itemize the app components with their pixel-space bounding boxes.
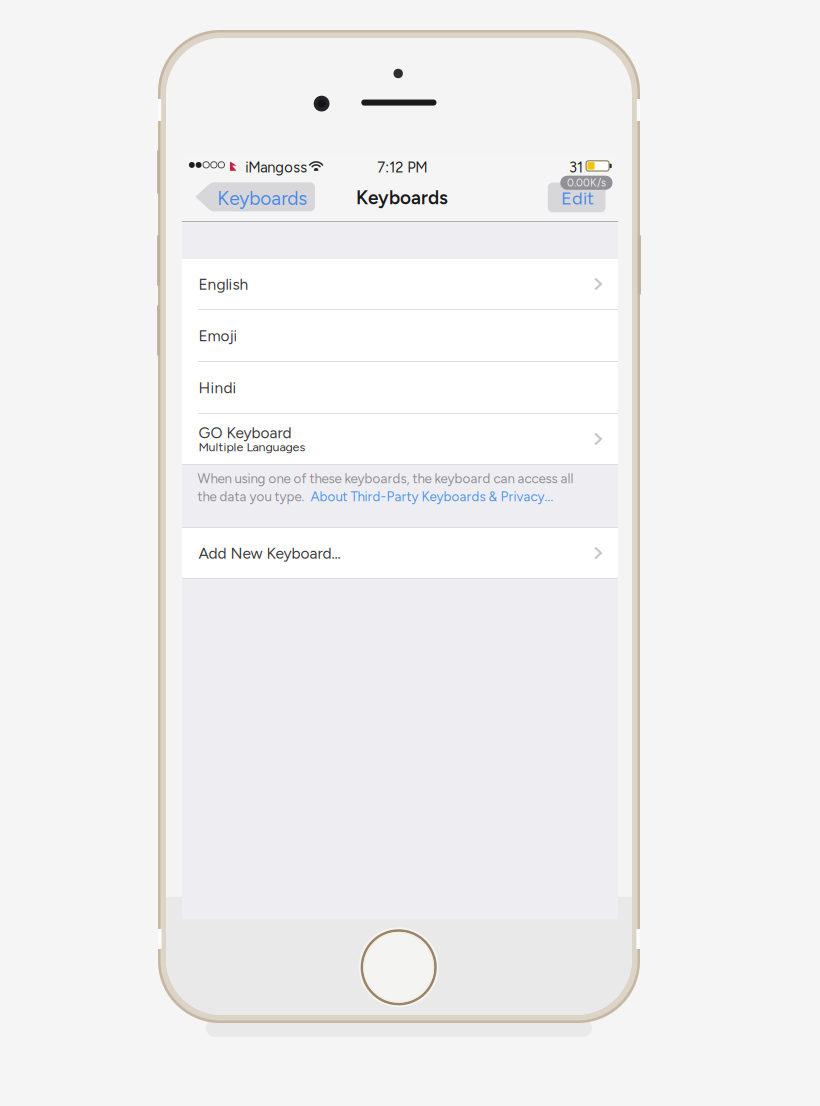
staticText: Keyboards [356,186,448,209]
button[interactable]: Emoji [182,310,618,361]
staticText: Edit [561,187,594,209]
button[interactable]: Keyboards [195,182,315,211]
staticText: Add New Keyboard... [198,544,340,563]
button[interactable]: Hindi [182,362,618,413]
staticText: About Third-Party Keyboards & Privacy... [311,488,554,504]
button[interactable]: Add New Keyboard... [182,528,618,578]
staticText: Emoji [198,326,237,345]
button[interactable]: About Third-Party Keyboards & Privacy... [311,488,554,504]
staticText: 0.00K/s [567,176,606,189]
staticText: Hindi [198,378,236,397]
staticText: 31 [569,159,583,176]
staticText: iMangoss [245,159,307,176]
staticText: When using one of these keyboards, the k… [198,470,574,486]
button[interactable]: English [182,259,618,309]
staticText: GO Keyboard [198,423,291,442]
staticText: 7:12 PM [377,159,427,176]
staticText: the data you type. [198,488,305,504]
staticText: Keyboards [217,187,307,210]
button[interactable]: Edit [548,182,606,212]
staticText: English [198,275,248,294]
button[interactable]: GO Keyboard [182,414,618,464]
staticText: Multiple Languages [198,439,305,454]
